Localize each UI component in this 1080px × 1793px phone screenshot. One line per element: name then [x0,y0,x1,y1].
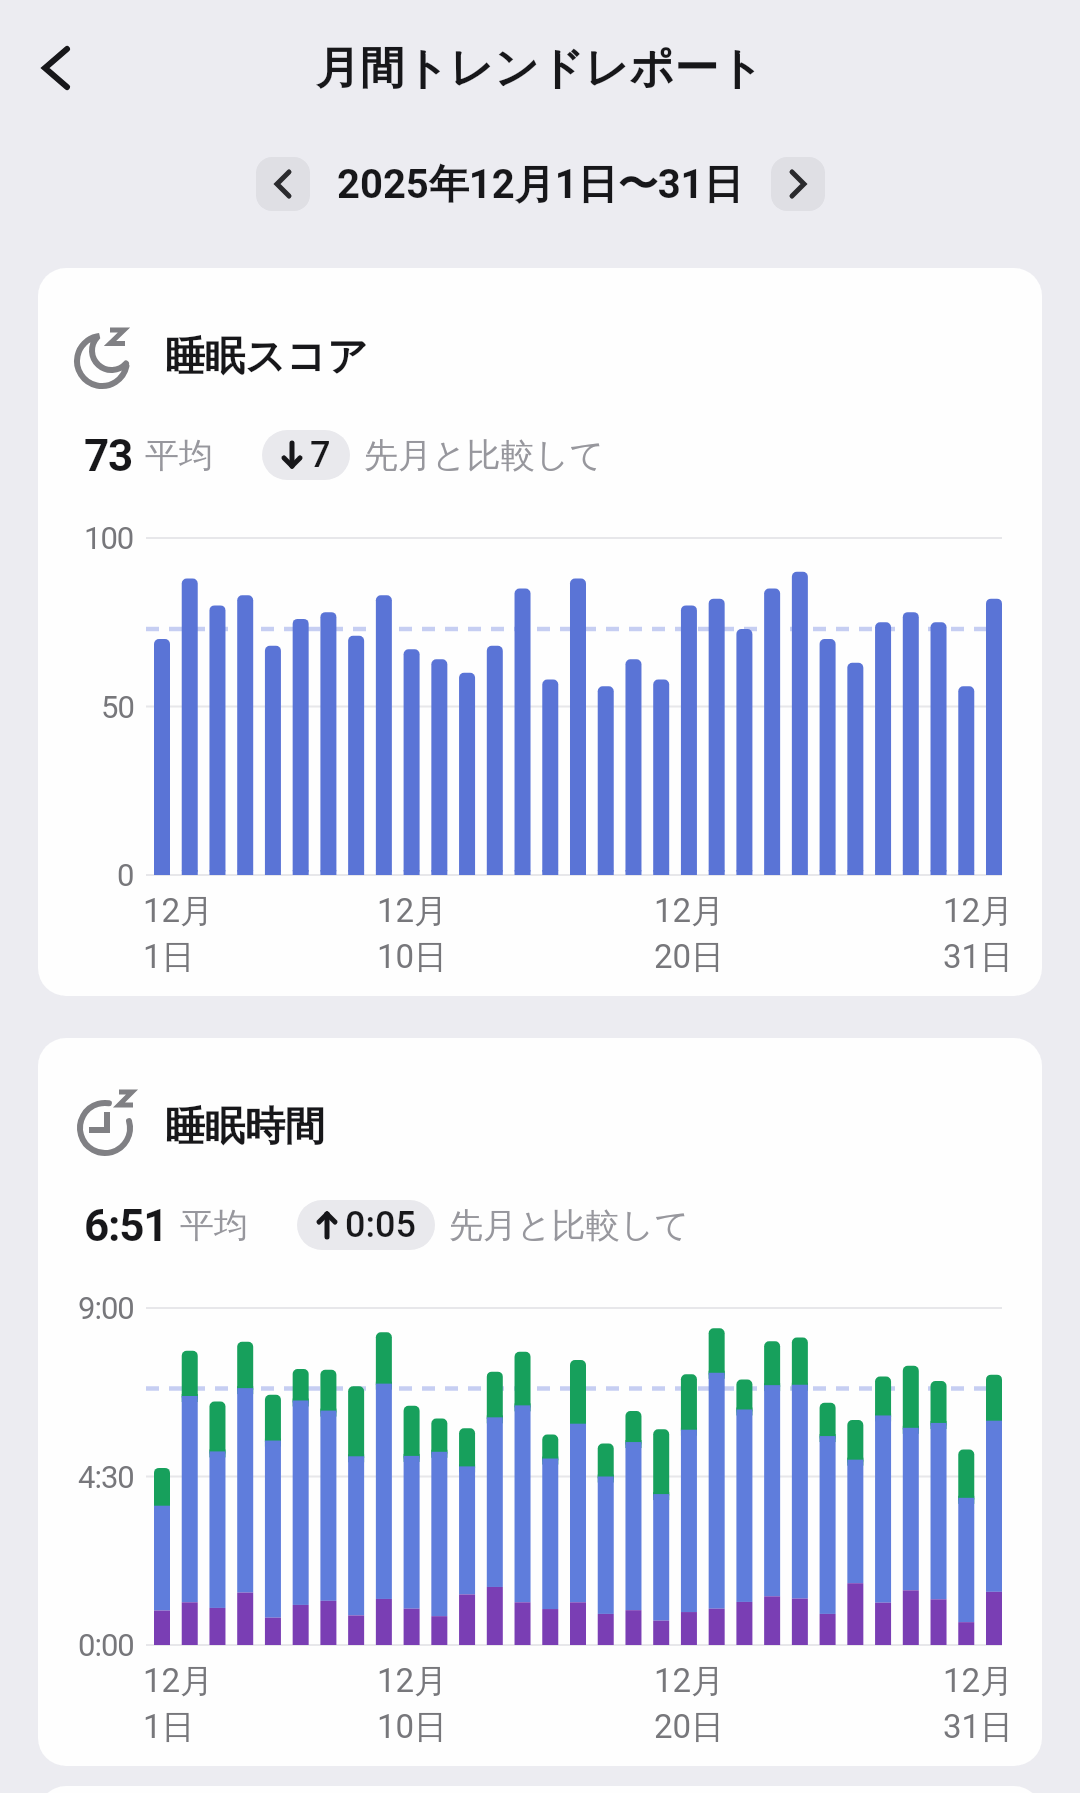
staticText: 10日 [377,1706,448,1748]
button[interactable] [20,32,92,104]
button[interactable] [771,157,825,211]
staticText: 月間トレンドレポート [316,41,764,96]
staticText: 4:30 [78,1459,134,1495]
staticText: 2025年12月1日〜31日 [337,159,744,209]
staticText: 0:05 [345,1204,416,1246]
staticText: 10日 [377,936,448,978]
staticText: 6:51 [84,1200,168,1250]
staticText: 12月 [377,1660,448,1702]
staticText: 1日 [143,936,195,978]
staticText: 7 [310,434,331,476]
staticText: 100 [84,520,134,556]
staticText: 12月 [654,1660,725,1702]
staticText: 先月と比較して [364,434,605,477]
staticText: 12月 [943,890,1014,932]
staticText: 睡眠スコア [165,331,368,381]
staticText: 12月 [943,1660,1014,1702]
staticText: 12月 [654,890,725,932]
staticText: 12月 [143,890,214,932]
staticText: 31日 [943,936,1014,978]
staticText: 平均 [145,434,213,477]
staticText: 先月と比較して [449,1204,690,1247]
staticText: 睡眠時間 [165,1101,325,1151]
staticText: 73 [84,430,133,480]
staticText: 12月 [377,890,448,932]
staticText: 31日 [943,1706,1014,1748]
staticText: 9:00 [78,1290,134,1326]
staticText: 50 [101,689,134,725]
staticText: 20日 [654,936,725,978]
staticText: 1日 [143,1706,195,1748]
staticText: 0 [117,857,134,893]
staticText: 平均 [180,1204,248,1247]
staticText: 20日 [654,1706,725,1748]
staticText: 0:00 [78,1627,134,1663]
button[interactable] [256,157,310,211]
staticText: 12月 [143,1660,214,1702]
